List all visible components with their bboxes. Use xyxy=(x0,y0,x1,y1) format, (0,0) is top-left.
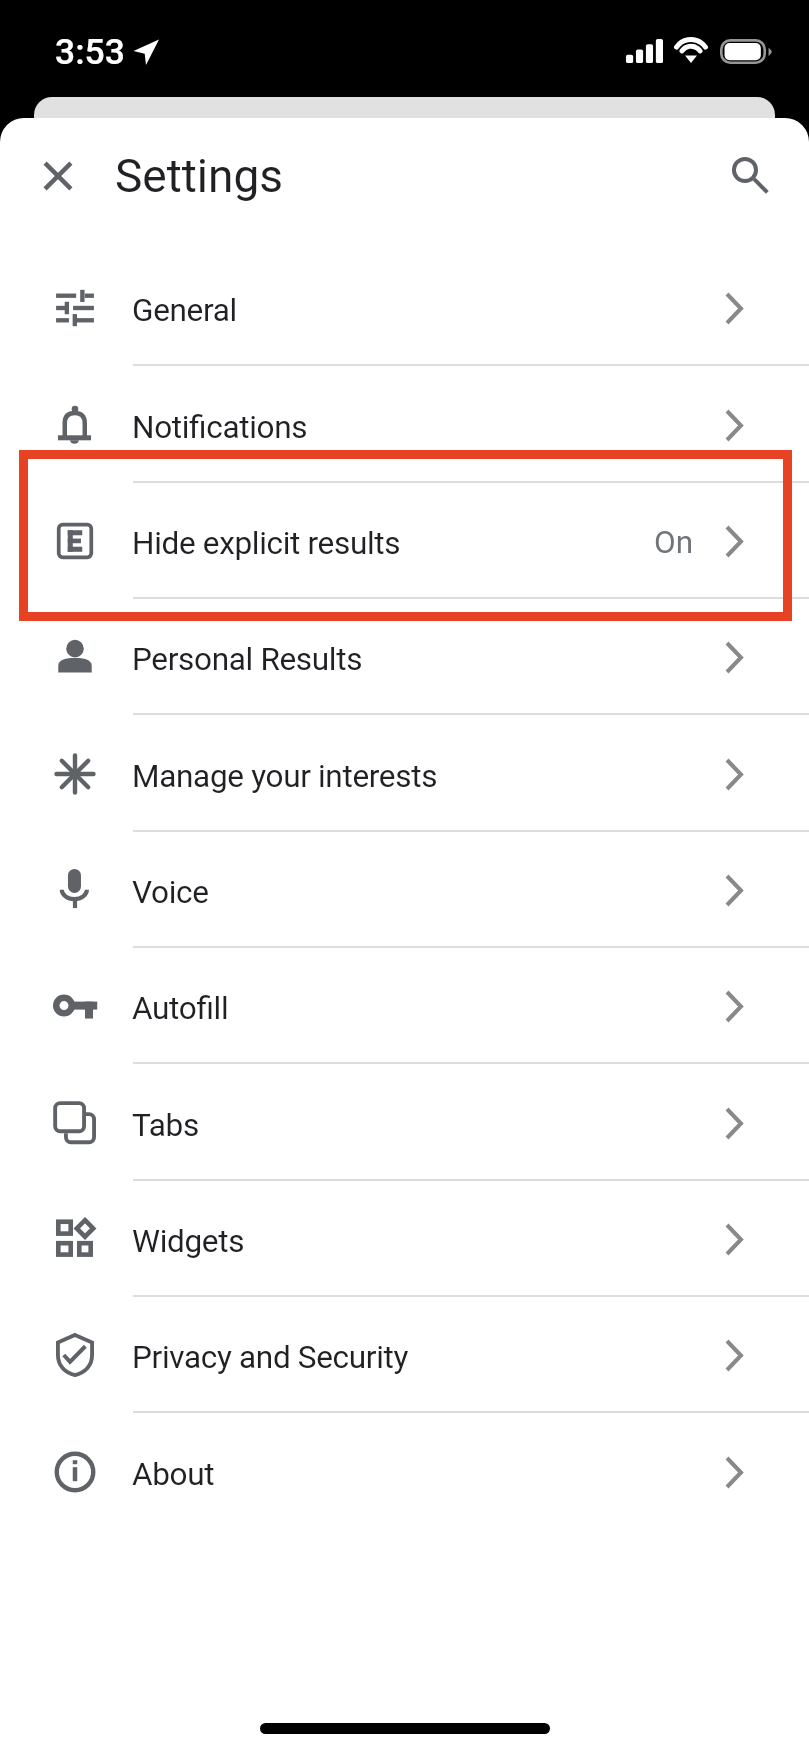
button[interactable]: Privacy and Security xyxy=(0,1297,809,1413)
staticText: Privacy and Security xyxy=(132,1339,409,1376)
button[interactable]: Hide explicit results xyxy=(0,483,809,599)
staticText: Voice xyxy=(132,874,209,911)
staticText: Manage your interests xyxy=(132,758,438,795)
staticText: 3:53 xyxy=(55,31,125,73)
button[interactable]: Tabs xyxy=(0,1065,809,1181)
staticText: Settings xyxy=(115,149,283,203)
button[interactable]: Notifications xyxy=(0,367,809,483)
button[interactable]: General xyxy=(0,250,809,366)
staticText: About xyxy=(132,1456,215,1493)
button[interactable]: Voice xyxy=(0,832,809,948)
button[interactable]: Personal Results xyxy=(0,599,809,715)
staticText: Widgets xyxy=(132,1223,245,1260)
staticText: Hide explicit results xyxy=(132,525,401,562)
staticText: Notifications xyxy=(132,409,308,446)
button[interactable]: Widgets xyxy=(0,1181,809,1297)
button[interactable]: Manage your interests xyxy=(0,716,809,832)
button[interactable]: Autofill xyxy=(0,948,809,1064)
button[interactable]: About xyxy=(0,1414,809,1530)
staticText: Autofill xyxy=(132,990,229,1027)
button[interactable]: Close xyxy=(24,142,92,210)
staticText: Tabs xyxy=(132,1107,199,1144)
staticText: Personal Results xyxy=(132,641,363,678)
button[interactable]: Search xyxy=(716,142,784,210)
staticText: General xyxy=(132,292,237,329)
staticText: On xyxy=(654,524,694,561)
